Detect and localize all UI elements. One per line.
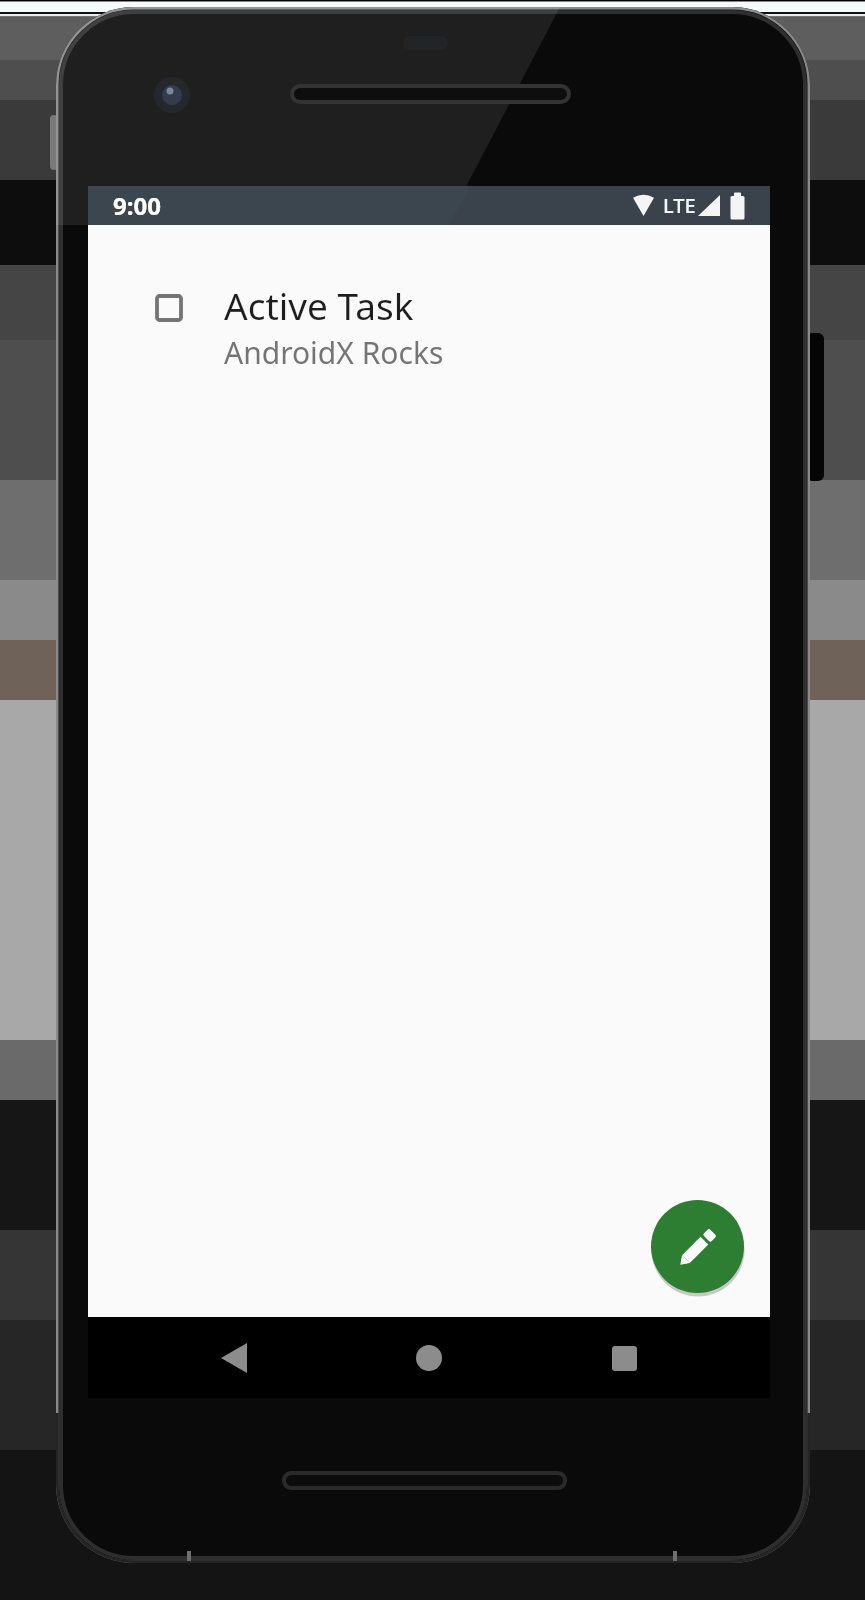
- button[interactable]: [210, 1334, 258, 1382]
- button[interactable]: [651, 1200, 744, 1293]
- button[interactable]: [155, 294, 183, 322]
- staticText: 9:00: [113, 189, 161, 222]
- button[interactable]: [405, 1334, 453, 1382]
- staticText: AndroidX Rocks: [224, 332, 444, 373]
- button[interactable]: Active Task: [155, 280, 750, 373]
- button[interactable]: [600, 1334, 648, 1382]
- staticText: LTE: [663, 192, 696, 219]
- staticText: Active Task: [224, 280, 414, 330]
